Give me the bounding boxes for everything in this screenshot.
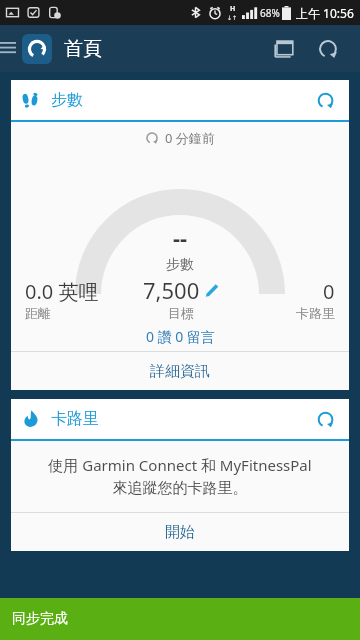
staticText: 同步完成 [12,610,68,628]
staticText: -- [173,222,188,252]
button[interactable]: Refresh 步數 [307,82,343,118]
button[interactable]: 7,500 [143,275,219,305]
staticText: 步數 [51,90,83,110]
staticText: 0 [323,278,335,305]
staticText: 7,500 [143,275,200,305]
staticText: 詳細資訊 [150,362,210,381]
staticText: 首頁 [64,37,102,61]
button[interactable]: Sync [306,27,350,71]
staticText: H [230,4,236,14]
staticText: 0 分鐘前 [165,129,215,147]
staticText: 開始 [165,523,195,542]
button[interactable]: Cards [262,27,306,71]
button[interactable]: 詳細資訊 [11,352,349,390]
staticText: ↓↑ [227,14,238,21]
button[interactable]: 0 讚 0 留言 [11,321,349,351]
staticText: 0 讚 0 留言 [146,327,215,346]
button[interactable]: Navigation drawer [0,25,18,72]
staticText: 使用 Garmin Connect 和 MyFitnessPal 來追蹤您的卡路… [48,455,312,498]
staticText: 卡路里 [296,305,335,321]
staticText: 上午 10:56 [296,5,354,21]
staticText: 68% [260,6,280,20]
button[interactable]: 開始 [11,513,349,551]
staticText: 0.0 英哩 [25,278,99,305]
staticText: 卡路里 [51,409,99,429]
button[interactable]: Refresh 卡路里 [307,401,343,437]
staticText: 距離 [25,305,51,321]
staticText: 步數 [166,256,194,274]
staticText: 目標 [168,305,194,321]
button[interactable] [22,34,52,64]
button[interactable]: 同步完成 [0,598,360,640]
